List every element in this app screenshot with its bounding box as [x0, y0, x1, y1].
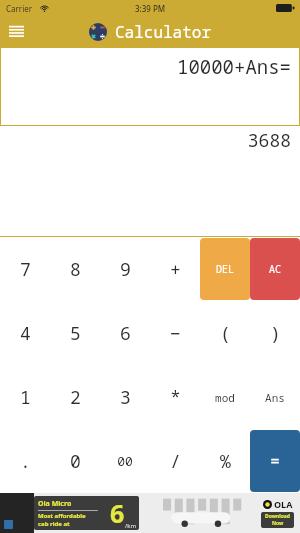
button[interactable]: mod — [200, 365, 250, 429]
staticText: Ans — [265, 390, 285, 405]
staticText: 3:39 PM — [135, 3, 166, 14]
staticText: + — [170, 257, 181, 282]
button[interactable]: + — [150, 237, 200, 301]
staticText: * — [170, 385, 181, 410]
staticText: Download — [265, 513, 290, 520]
button[interactable]: 4 — [0, 301, 50, 365]
button[interactable]: Open navigation menu — [0, 16, 32, 48]
button[interactable]: 0 — [50, 429, 100, 493]
staticText: Ola Micro — [38, 499, 72, 509]
staticText: 00 — [117, 452, 133, 470]
button[interactable]: 7 — [0, 237, 50, 301]
staticText: 3 — [120, 385, 131, 410]
button[interactable]: 2 — [50, 365, 100, 429]
button[interactable]: . — [0, 429, 50, 493]
button[interactable]: % — [200, 429, 250, 493]
staticText: = — [270, 450, 280, 472]
staticText: % — [220, 449, 231, 474]
button[interactable]: = — [250, 430, 300, 492]
button[interactable]: 9 — [100, 237, 150, 301]
staticText: Now — [272, 520, 284, 527]
staticText: 0 — [70, 449, 81, 474]
staticText: mod — [215, 390, 235, 405]
button[interactable]: Download — [265, 513, 290, 527]
button[interactable]: 00 — [100, 429, 150, 493]
staticText: 8 — [70, 257, 81, 282]
staticText: 9 — [120, 257, 131, 282]
staticText: AC — [269, 262, 281, 276]
staticText: 10000+Ans= — [176, 54, 291, 80]
staticText: / — [170, 449, 181, 474]
staticText: 7 — [20, 257, 31, 282]
button[interactable]: DEL — [200, 238, 250, 300]
button[interactable]: 10000+Ans= — [0, 48, 300, 126]
staticText: − — [170, 321, 181, 346]
button[interactable]: * — [150, 365, 200, 429]
staticText: ( — [220, 321, 231, 346]
staticText: 6 — [110, 496, 125, 530]
button[interactable]: 5 — [50, 301, 100, 365]
button[interactable]: / — [150, 429, 200, 493]
staticText: ) — [270, 321, 281, 346]
staticText: 5 — [70, 321, 81, 346]
staticText: Carrier — [6, 3, 33, 14]
button[interactable]: AC — [250, 238, 300, 300]
staticText: 3688 — [0, 128, 291, 153]
button[interactable]: 6 — [100, 301, 150, 365]
button[interactable]: Ans — [250, 365, 300, 429]
staticText: cab ride at — [38, 520, 70, 528]
button[interactable]: ( — [200, 301, 250, 365]
button[interactable]: 1 — [0, 365, 50, 429]
button[interactable]: − — [150, 301, 200, 365]
staticText: 1 — [20, 385, 31, 410]
staticText: OLA — [274, 498, 293, 510]
staticText: /km — [125, 522, 137, 530]
staticText: 6 — [120, 321, 131, 346]
staticText: Calculator — [115, 21, 212, 43]
staticText: 4 — [20, 321, 31, 346]
staticText: DEL — [216, 262, 234, 276]
staticText: . — [20, 449, 31, 474]
button[interactable]: 8 — [50, 237, 100, 301]
staticText: Most affordable — [38, 512, 86, 520]
button[interactable]: ) — [250, 301, 300, 365]
button[interactable]: 3 — [100, 365, 150, 429]
staticText: 2 — [70, 385, 81, 410]
